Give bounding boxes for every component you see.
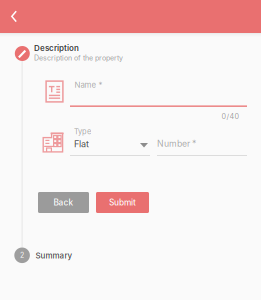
staticText: 0/40 bbox=[221, 112, 239, 121]
staticText: Type bbox=[74, 127, 91, 136]
staticText: Summary bbox=[35, 251, 72, 260]
staticText: Description of the property bbox=[34, 54, 123, 62]
staticText: Submit bbox=[109, 197, 136, 207]
button[interactable]: Number bbox=[157, 124, 247, 155]
staticText: Number * bbox=[157, 138, 196, 149]
button[interactable]: 2 bbox=[14, 244, 247, 266]
staticText: Flat bbox=[74, 138, 89, 149]
button[interactable]: Submit bbox=[96, 192, 149, 213]
staticText: Description bbox=[34, 43, 79, 53]
button[interactable]: Back bbox=[38, 192, 89, 213]
button[interactable]: Type, Flat bbox=[70, 124, 150, 155]
button[interactable]: Back bbox=[7, 6, 23, 27]
staticText: Back bbox=[53, 197, 73, 207]
button[interactable]: Name bbox=[70, 76, 247, 104]
staticText: Name * bbox=[74, 80, 102, 90]
staticText: 2 bbox=[20, 251, 24, 259]
